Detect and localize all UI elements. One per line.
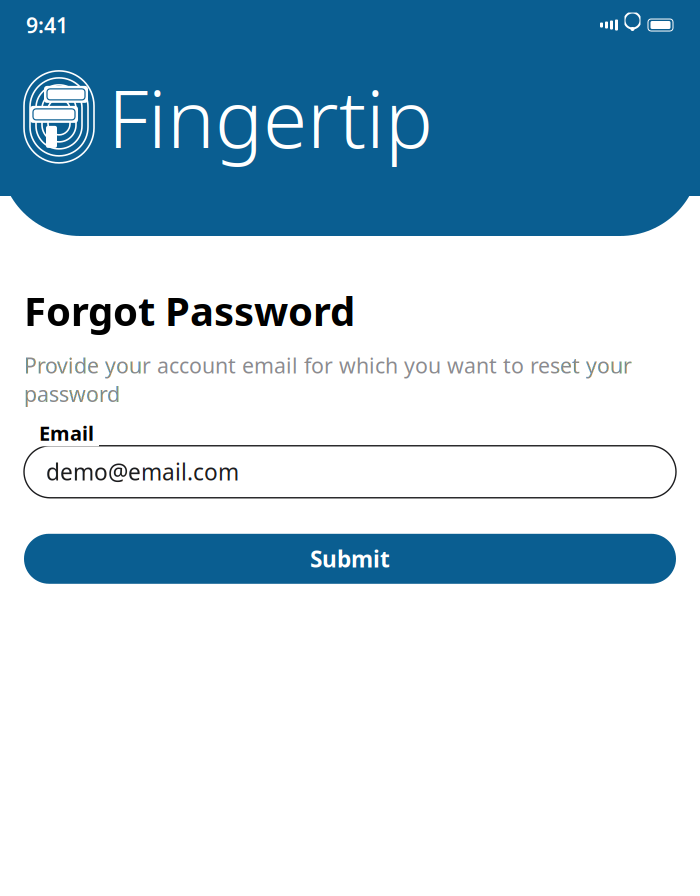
staticText: Provide your account email for which you… (24, 351, 632, 408)
staticText: Submit (310, 544, 390, 574)
staticText: 9:41 (26, 11, 68, 39)
staticText: Forgot Password (24, 284, 355, 337)
staticText: demo@email.com (46, 457, 239, 487)
staticText: Email (39, 420, 94, 446)
button[interactable]: Submit (24, 534, 676, 584)
staticText: Fingertip (108, 64, 433, 170)
